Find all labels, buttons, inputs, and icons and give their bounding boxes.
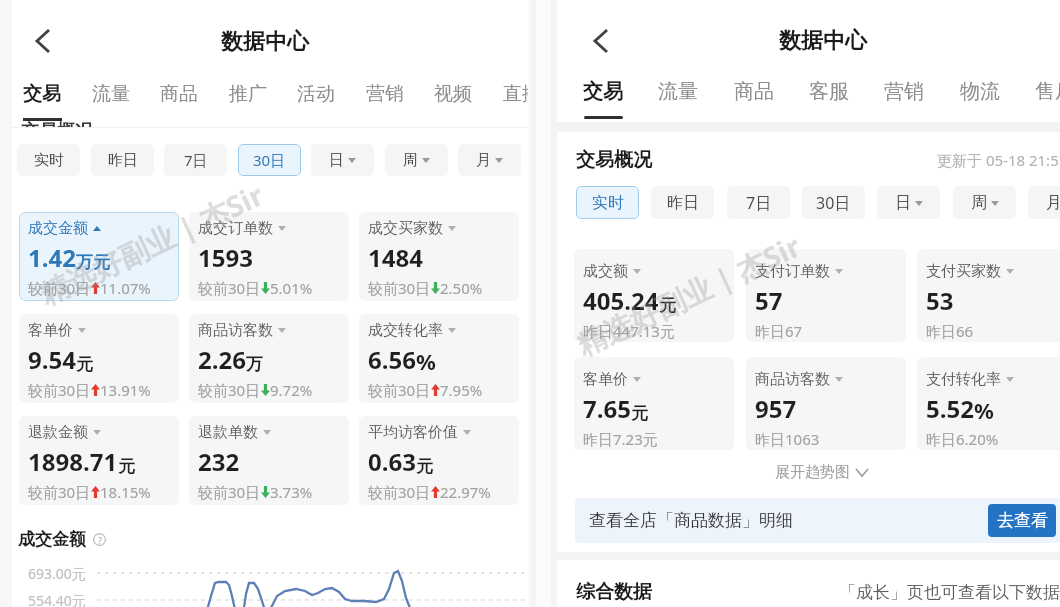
button[interactable]: 成交买家数: [359, 212, 519, 301]
staticText: 流量: [92, 82, 130, 106]
button[interactable]: 交易: [583, 79, 623, 104]
button[interactable]: 日: [311, 144, 374, 176]
button[interactable]: 营销: [366, 82, 404, 106]
staticText: 活动: [297, 82, 335, 106]
staticText: 元: [118, 456, 135, 477]
button[interactable]: 物流: [960, 79, 1000, 104]
button[interactable]: 商品访客数: [746, 357, 906, 450]
button[interactable]: 流量: [658, 79, 698, 104]
staticText: 405.24: [583, 284, 659, 317]
staticText: 商品: [734, 79, 774, 104]
button[interactable]: 视频: [434, 82, 472, 106]
button[interactable]: 退款单数: [189, 416, 349, 505]
button[interactable]: 成交转化率: [359, 314, 519, 403]
button[interactable]: 日: [877, 186, 940, 219]
button[interactable]: 营销: [884, 79, 924, 104]
staticText: 支付订单数: [755, 262, 830, 281]
staticText: 元: [659, 295, 676, 316]
staticText: 售后: [1035, 79, 1060, 104]
staticText: 22.97%: [440, 482, 491, 502]
staticText: 1484: [368, 241, 423, 274]
button[interactable]: 流量: [92, 82, 130, 106]
staticText: 昨日1063: [755, 429, 820, 449]
button[interactable]: 实时: [17, 144, 80, 176]
button[interactable]: 活动: [297, 82, 335, 106]
button[interactable]: 直播: [503, 82, 528, 106]
staticText: 视频: [434, 82, 472, 106]
staticText: 30日: [253, 150, 286, 170]
staticText: 周: [403, 151, 418, 170]
staticText: 日: [329, 151, 344, 170]
staticText: 「成长」页也可查看以下数据: [839, 582, 1060, 603]
staticText: 693.00元: [28, 564, 86, 583]
button[interactable]: 商品: [734, 79, 774, 104]
button[interactable]: 周: [385, 144, 448, 176]
staticText: 交易: [23, 82, 61, 106]
button[interactable]: 周: [953, 186, 1016, 219]
staticText: 交易概况: [21, 121, 93, 127]
button[interactable]: 月: [1028, 186, 1060, 219]
staticText: 7日: [746, 192, 772, 214]
staticText: 流量: [658, 79, 698, 104]
button[interactable]: 实时: [576, 186, 639, 219]
staticText: 18.15%: [100, 482, 151, 502]
button[interactable]: 支付买家数: [917, 249, 1060, 342]
button[interactable]: 交易: [23, 82, 61, 106]
staticText: 交易概况: [576, 148, 652, 172]
staticText: 商品访客数: [198, 321, 273, 340]
staticText: 57: [755, 284, 783, 317]
button[interactable]: 客单价: [574, 357, 734, 450]
button[interactable]: 售后: [1035, 79, 1060, 104]
button[interactable]: 30日: [802, 186, 865, 219]
staticText: 营销: [884, 79, 924, 104]
staticText: 支付买家数: [926, 262, 1001, 281]
staticText: 较前30日: [28, 482, 91, 502]
staticText: 较前30日: [28, 278, 91, 298]
button[interactable]: 推广: [229, 82, 267, 106]
button[interactable]: 查看全店「商品数据」明细: [575, 498, 1060, 543]
button[interactable]: 昨日: [91, 144, 154, 176]
staticText: 物流: [960, 79, 1000, 104]
button[interactable]: 客服: [809, 79, 849, 104]
button[interactable]: 月: [458, 144, 521, 176]
staticText: 957: [755, 392, 797, 425]
staticText: 万: [246, 354, 263, 375]
button[interactable]: 商品: [160, 82, 198, 106]
staticText: 昨日447.13元: [583, 321, 675, 341]
staticText: 商品访客数: [755, 370, 830, 389]
button[interactable]: 成交额: [574, 249, 734, 342]
button[interactable]: 去查看: [988, 504, 1056, 537]
button[interactable]: 平均访客价值: [359, 416, 519, 505]
button[interactable]: 客单价: [19, 314, 179, 403]
button[interactable]: 成交订单数: [189, 212, 349, 301]
button[interactable]: 成交金额: [19, 212, 179, 301]
staticText: 日: [895, 193, 911, 213]
button[interactable]: 30日: [238, 144, 301, 176]
staticText: 万元: [76, 252, 110, 273]
button[interactable]: 昨日: [651, 186, 714, 219]
button[interactable]: Back: [23, 21, 63, 61]
button[interactable]: 7日: [727, 186, 790, 219]
button[interactable]: 支付订单数: [746, 249, 906, 342]
staticText: 7日: [184, 150, 208, 170]
staticText: 精选好副业 | 杰Sir: [33, 174, 270, 313]
staticText: 较前30日: [198, 380, 261, 400]
staticText: 查看全店「商品数据」明细: [589, 510, 793, 531]
staticText: 元: [631, 403, 648, 424]
staticText: 直播: [503, 82, 528, 106]
staticText: 元: [76, 354, 93, 375]
button[interactable]: 展开趋势图: [775, 463, 868, 482]
staticText: 成交金额: [28, 219, 88, 238]
staticText: 更新于 05-18 21:5: [937, 150, 1059, 170]
staticText: 较前30日: [368, 278, 431, 298]
staticText: 客服: [809, 79, 849, 104]
staticText: 元: [416, 456, 433, 477]
button[interactable]: 7日: [164, 144, 227, 176]
staticText: 较前30日: [198, 278, 261, 298]
button[interactable]: 退款金额: [19, 416, 179, 505]
staticText: 13.91%: [100, 380, 151, 400]
button[interactable]: Back: [581, 21, 621, 61]
button[interactable]: 支付转化率: [917, 357, 1060, 450]
button[interactable]: 商品访客数: [189, 314, 349, 403]
staticText: 实时: [592, 193, 624, 213]
